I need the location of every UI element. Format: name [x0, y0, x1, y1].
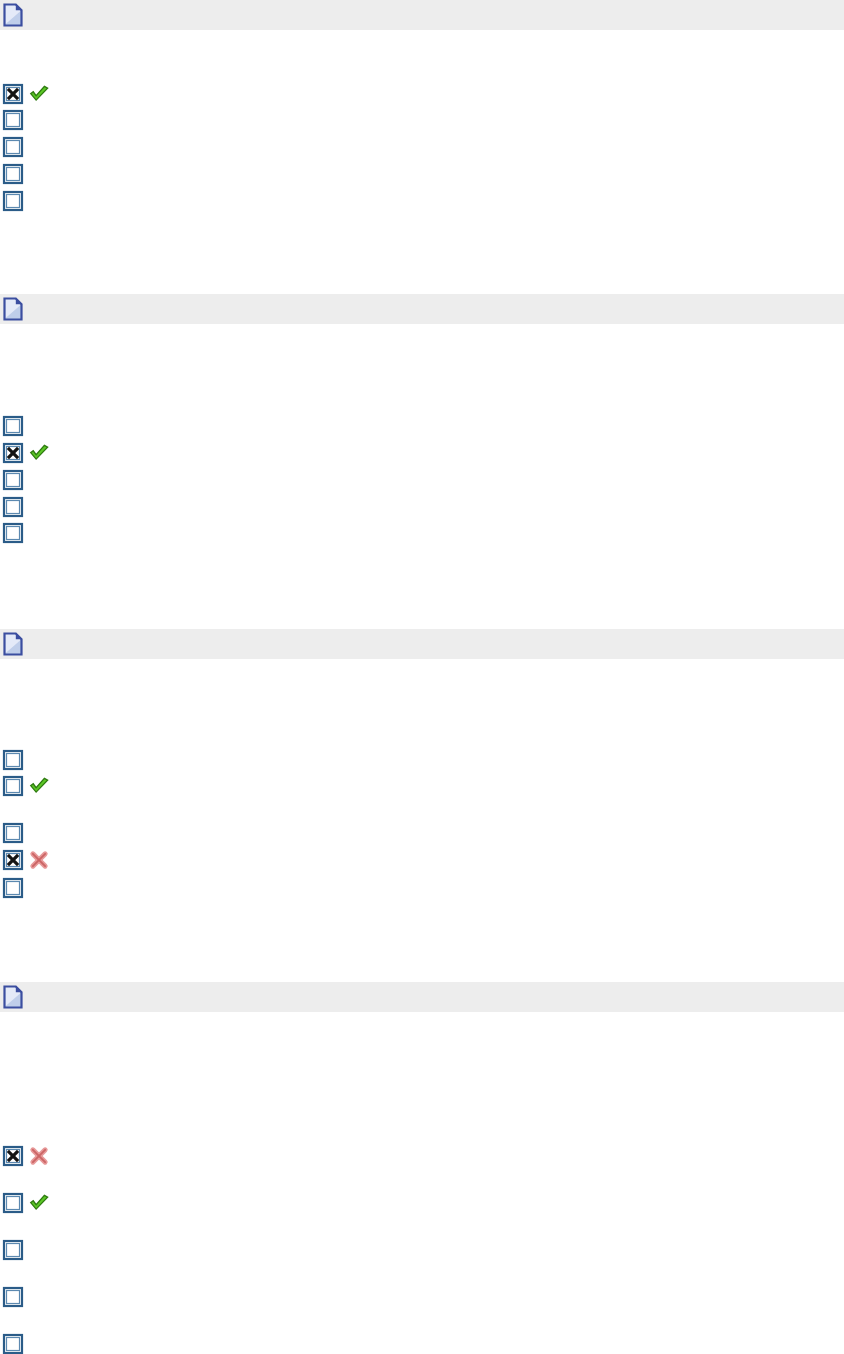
button[interactable]: Question 2 option 2, selected, correct	[4, 444, 48, 462]
button[interactable]: Question section header	[0, 294, 844, 324]
button[interactable]: Question 2 option 3	[4, 471, 30, 489]
button[interactable]: Question 4 option 2, correct answer	[4, 1194, 48, 1212]
button[interactable]: Question 2 option 1	[4, 417, 30, 435]
button[interactable]: Question 2 option 4	[4, 498, 30, 516]
button[interactable]: Question 1 option 3	[4, 138, 30, 156]
button[interactable]: Question 1 option 1, selected, correct	[4, 85, 48, 103]
button[interactable]: Question 4 option 3	[4, 1241, 30, 1259]
button[interactable]: Question 1 option 2	[4, 111, 30, 129]
button[interactable]: Question 3 option 2, correct answer	[4, 777, 48, 795]
button[interactable]: Question 4 option 5	[4, 1335, 30, 1353]
button[interactable]: Question 4 option 4	[4, 1288, 30, 1306]
button[interactable]: Question 1 option 4	[4, 165, 30, 183]
button[interactable]: Question 4 option 1, selected, incorrect	[4, 1147, 48, 1165]
button[interactable]: Question section header	[0, 0, 844, 30]
button[interactable]: Question section header	[0, 629, 844, 659]
button[interactable]: Question 3 option 3	[4, 824, 30, 842]
button[interactable]: Question 3 option 5	[4, 879, 30, 897]
button[interactable]: Question 3 option 4, selected, incorrect	[4, 851, 48, 869]
button[interactable]: Question 1 option 5	[4, 192, 30, 210]
button[interactable]: Question 3 option 1	[4, 751, 30, 769]
button[interactable]: Question section header	[0, 982, 844, 1012]
button[interactable]: Question 2 option 5	[4, 524, 30, 542]
